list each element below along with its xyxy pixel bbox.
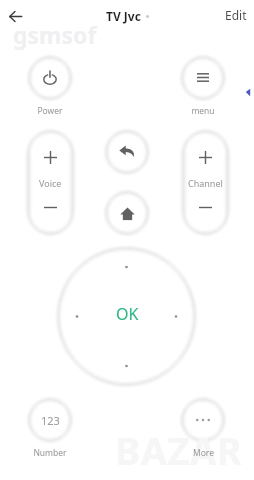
button[interactable]: Channel up	[183, 131, 228, 183]
staticText: Voice	[39, 177, 62, 189]
button[interactable]: Open panel	[244, 84, 254, 100]
staticText: 123	[41, 413, 60, 428]
staticText: Number	[33, 447, 67, 459]
button[interactable]: Menu	[182, 57, 224, 99]
staticText: BAZAR	[115, 424, 243, 476]
button[interactable]: Number	[29, 399, 71, 441]
button[interactable]: Voice down	[28, 182, 73, 234]
staticText: Edit	[225, 7, 247, 23]
staticText: gsmsof	[13, 19, 97, 50]
button[interactable]: Back	[106, 131, 148, 173]
button[interactable]: More	[182, 399, 224, 441]
button[interactable]: Edit	[223, 7, 249, 23]
button[interactable]: Home	[106, 192, 148, 234]
staticText: menu	[191, 105, 215, 117]
staticText: OK	[116, 303, 139, 325]
button[interactable]: Channel down	[183, 182, 228, 234]
button[interactable]: Power	[29, 57, 71, 99]
staticText: More	[193, 447, 214, 459]
staticText: Power	[37, 105, 63, 117]
staticText: TV Jvc	[106, 8, 141, 24]
staticText: Channel	[188, 177, 223, 189]
button[interactable]: OK	[103, 290, 151, 338]
button[interactable]: Voice up	[28, 131, 73, 183]
button[interactable]: Back	[4, 4, 28, 28]
